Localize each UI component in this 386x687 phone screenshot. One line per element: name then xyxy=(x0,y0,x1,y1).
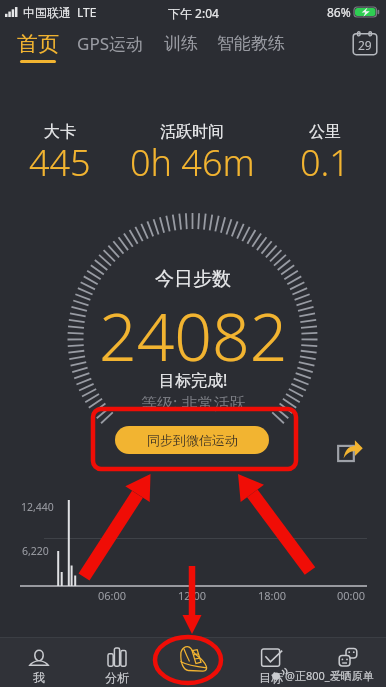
button[interactable]: Friends xyxy=(309,637,386,687)
button[interactable]: 分析 xyxy=(78,637,155,687)
staticText: 0.1 xyxy=(300,138,350,187)
staticText: 今日步数 xyxy=(155,267,231,291)
staticText: 分析 xyxy=(105,670,129,685)
staticText: 中国联通 xyxy=(23,5,71,20)
button[interactable]: Calendar xyxy=(352,31,378,55)
button[interactable]: Steps xyxy=(155,637,232,687)
staticText: 智能教练 xyxy=(217,33,285,54)
staticText: 86% xyxy=(327,4,351,20)
staticText: 活跃时间 xyxy=(160,122,224,142)
staticText: 我 xyxy=(33,670,45,685)
staticText: 同步到微信运动 xyxy=(147,432,238,448)
staticText: 12:00 xyxy=(178,588,207,603)
button[interactable]: 训练 xyxy=(157,29,204,57)
staticText: GPS运动 xyxy=(77,32,143,55)
button[interactable]: 同步到微信运动 xyxy=(115,426,269,454)
button[interactable]: GPS运动 xyxy=(72,29,148,57)
staticText: @正800_爱晒原单 xyxy=(285,668,374,683)
staticText: 等级: 非常活跃 xyxy=(141,392,246,414)
staticText: 目标 xyxy=(259,670,283,685)
button[interactable]: 我 xyxy=(0,637,78,687)
staticText: 24082 xyxy=(99,290,288,380)
button[interactable]: 智能教练 xyxy=(209,29,293,57)
button[interactable]: Share xyxy=(336,437,363,464)
staticText: 6,220 xyxy=(22,544,49,558)
staticText: 29 xyxy=(358,37,372,53)
staticText: 0h 46m xyxy=(130,138,255,187)
staticText: 目标完成! xyxy=(159,369,228,391)
button[interactable]: 首页 xyxy=(10,28,66,60)
button[interactable]: 目标 xyxy=(232,637,309,687)
staticText: LTE xyxy=(77,4,97,20)
staticText: 训练 xyxy=(164,33,198,54)
staticText: 大卡 xyxy=(44,122,76,142)
staticText: 公里 xyxy=(309,122,341,142)
staticText: 12,440 xyxy=(21,500,54,514)
staticText: 下午 2:04 xyxy=(168,5,219,21)
staticText: 06:00 xyxy=(98,588,127,603)
staticText: 445 xyxy=(29,138,91,187)
staticText: 首页 xyxy=(17,31,59,57)
staticText: 00:00 xyxy=(337,588,366,603)
staticText: 18:00 xyxy=(258,588,287,603)
